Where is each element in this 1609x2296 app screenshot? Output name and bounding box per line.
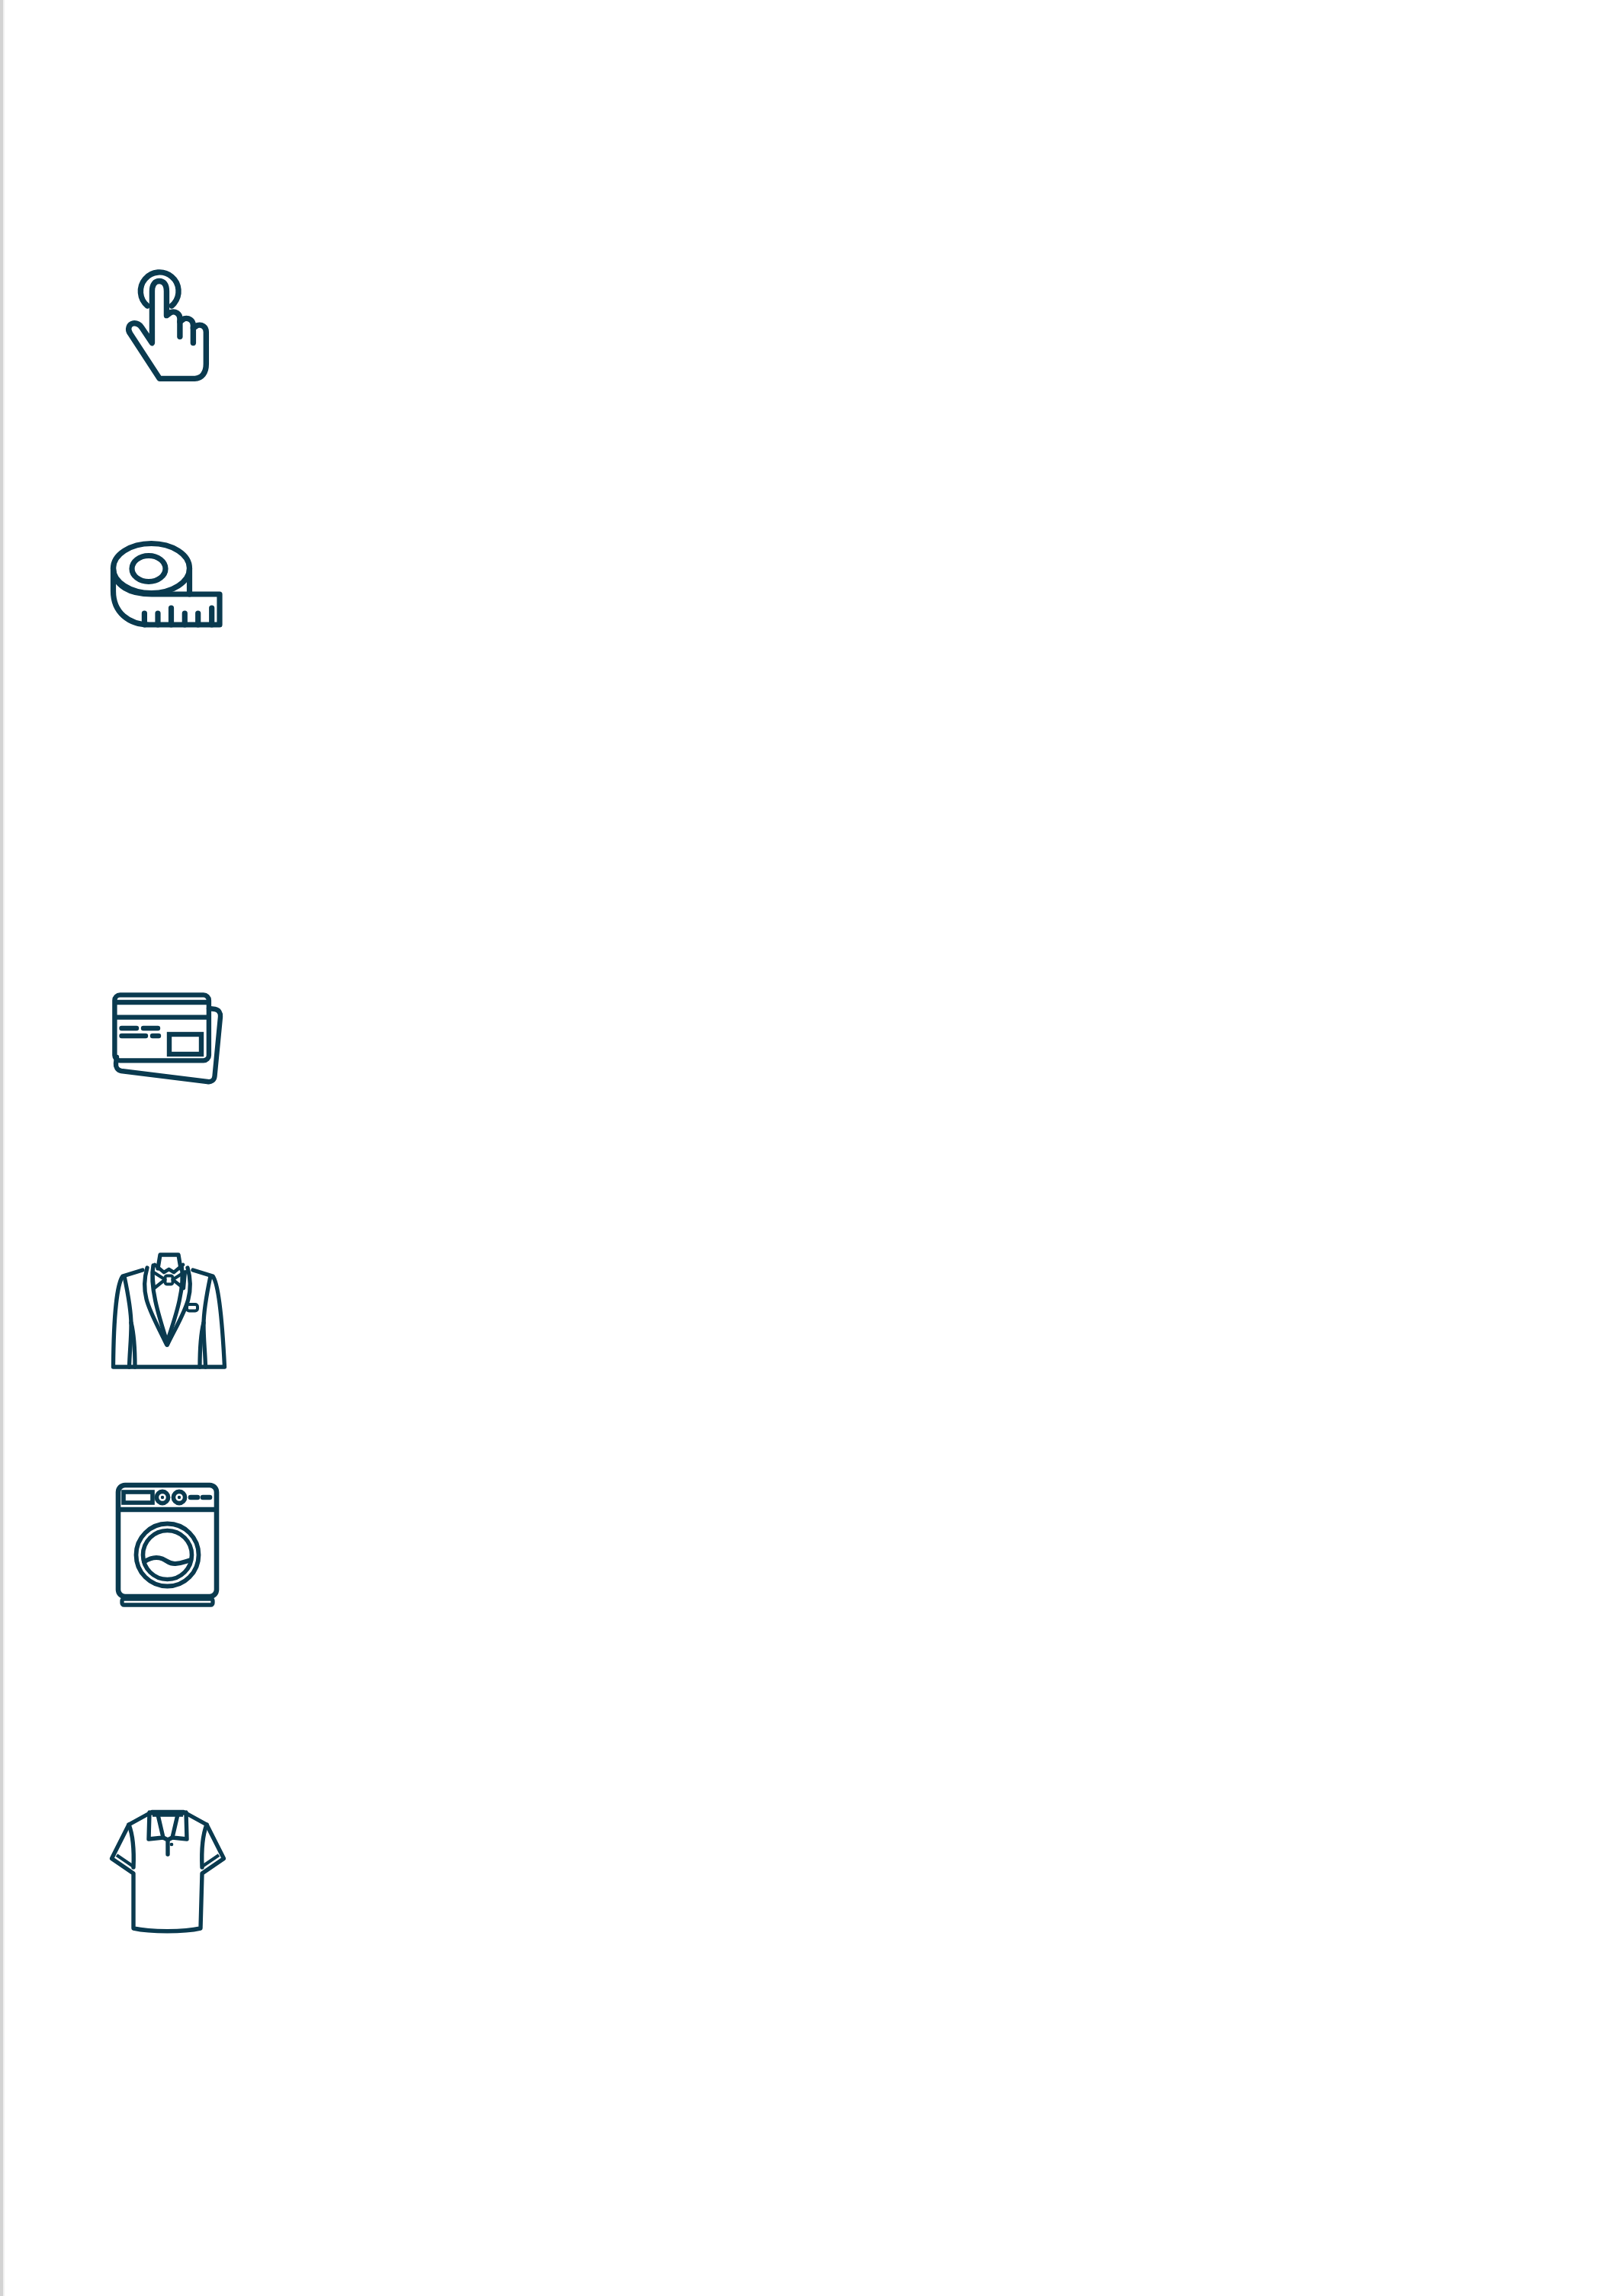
button[interactable]: Formal wear	[111, 1253, 226, 1371]
button[interactable]: Laundry	[116, 1483, 219, 1607]
button[interactable]: Shirts	[111, 1810, 224, 1934]
button[interactable]: Tap to start	[125, 269, 211, 384]
button[interactable]: Measurements	[111, 541, 223, 628]
button[interactable]: Payment methods	[112, 992, 223, 1084]
